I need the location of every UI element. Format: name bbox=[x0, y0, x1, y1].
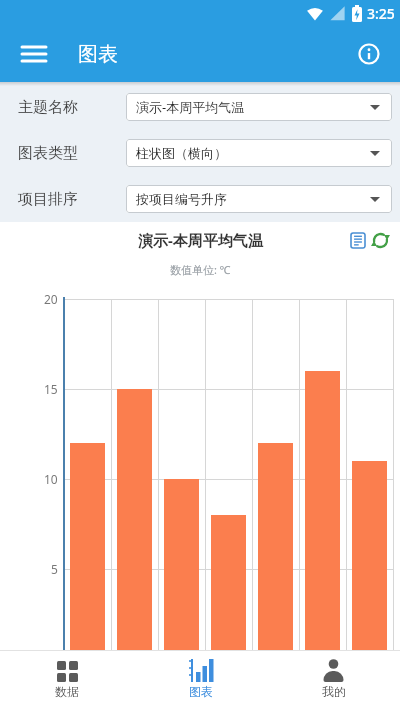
staticText: 演示-本周平均气温 bbox=[138, 230, 263, 250]
staticText: 主题名称 bbox=[18, 98, 78, 117]
staticText: 图表 bbox=[189, 684, 213, 699]
button[interactable]: 演示-本周平均气温 bbox=[126, 93, 392, 121]
staticText: 我的 bbox=[322, 684, 346, 699]
button[interactable]: 我的 bbox=[267, 651, 400, 712]
button[interactable]: 按项目编号升序 bbox=[126, 185, 392, 213]
button[interactable]: 图表 bbox=[134, 651, 267, 712]
staticText: 按项目编号升序 bbox=[136, 191, 227, 207]
button[interactable] bbox=[372, 232, 389, 249]
staticText: 3:25 bbox=[367, 4, 395, 23]
staticText: 图表 bbox=[78, 42, 118, 67]
staticText: 15 bbox=[44, 381, 58, 397]
staticText: 图表类型 bbox=[18, 144, 78, 163]
button[interactable]: 柱状图（横向） bbox=[126, 139, 392, 167]
staticText: 数据 bbox=[55, 684, 79, 699]
staticText: 10 bbox=[44, 471, 58, 487]
staticText: 柱状图（横向） bbox=[136, 145, 227, 161]
button[interactable]: 数据 bbox=[0, 651, 134, 712]
staticText: 项目排序 bbox=[18, 190, 78, 209]
button[interactable] bbox=[358, 43, 380, 65]
staticText: 数值单位: ℃ bbox=[170, 262, 231, 277]
button[interactable] bbox=[22, 44, 46, 64]
staticText: 5 bbox=[51, 561, 58, 577]
button[interactable] bbox=[351, 233, 365, 248]
staticText: 演示-本周平均气温 bbox=[136, 98, 245, 116]
staticText: 20 bbox=[44, 291, 58, 307]
